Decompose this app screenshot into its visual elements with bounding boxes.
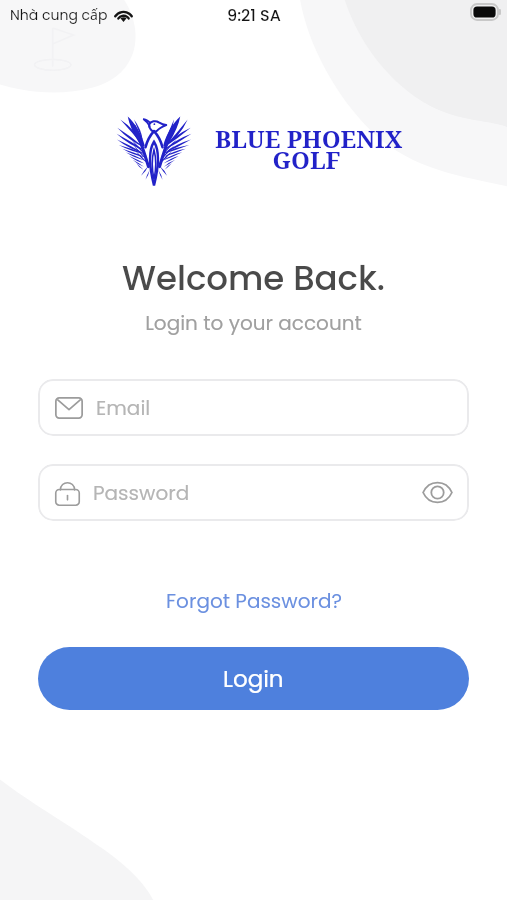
staticText: Nhà cung cấp <box>10 5 108 25</box>
staticText: Login to your account <box>0 309 507 337</box>
button[interactable]: Show password <box>418 477 457 508</box>
button[interactable]: Login <box>38 647 469 710</box>
button[interactable]: Forgot Password? <box>156 583 352 619</box>
staticText: Welcome Back. <box>0 254 507 302</box>
button[interactable]: Password <box>38 464 469 521</box>
staticText: Forgot Password? <box>166 587 342 615</box>
button[interactable]: Email <box>38 379 469 436</box>
staticText: GOLF <box>53 143 507 176</box>
staticText: Password <box>93 479 190 507</box>
staticText: 9:21 SA <box>227 4 281 26</box>
staticText: Login <box>223 663 284 695</box>
staticText: BLUE PHOENIX <box>215 122 403 155</box>
staticText: Email <box>96 394 151 422</box>
